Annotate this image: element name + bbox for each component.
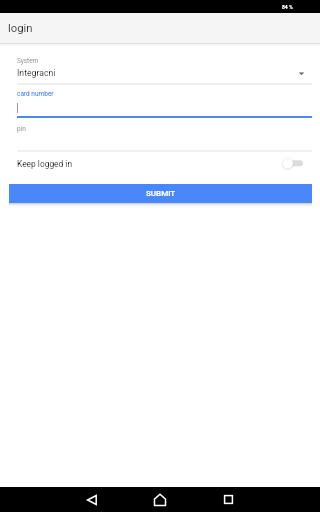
button[interactable]: pin [17,125,26,133]
other: Open system list [298,70,305,77]
button[interactable]: Home [145,487,175,512]
button[interactable]: System [17,57,39,65]
button[interactable]: SUBMIT [9,184,312,203]
staticText: System [17,57,39,65]
staticText: Keep logged in [17,159,282,169]
staticText: login [8,22,33,35]
staticText: SUBMIT [146,189,176,198]
staticText: card number [17,90,54,98]
staticText: Integracni [17,68,56,78]
button[interactable]: Recent apps [213,487,243,512]
staticText: 84 % [282,4,293,10]
button[interactable]: Keep logged in [17,152,303,175]
staticText: pin [17,125,26,133]
button[interactable]: Back [77,487,107,512]
